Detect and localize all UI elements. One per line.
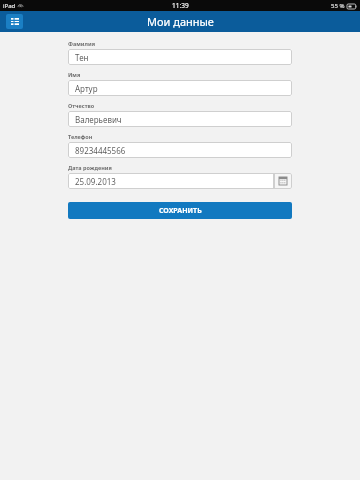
button[interactable]: СОХРАНИТЬ [68,202,292,219]
button[interactable]: Артур [68,80,292,96]
staticText: Дата рождения [68,164,112,171]
staticText: iPad [3,2,16,10]
staticText: Фамилия [68,40,96,47]
button[interactable]: Валерьевич [68,111,292,127]
staticText: 11:39 [172,1,189,10]
staticText: Отчество [68,102,95,109]
staticText: Телефон [68,133,93,140]
staticText: 89234445566 [75,145,126,156]
staticText: Мои данные [147,14,214,29]
staticText: Имя [68,71,81,78]
button[interactable]: 25.09.2013 [68,173,274,189]
staticText: Валерьевич [75,114,122,125]
staticText: Артур [75,83,98,94]
button[interactable]: 89234445566 [68,142,292,158]
button[interactable]: Pick date [274,173,292,189]
staticText: Тен [75,52,89,63]
staticText: 25.09.2013 [75,176,116,187]
button[interactable]: Menu [6,14,23,29]
staticText: 55 % [331,2,345,10]
button[interactable]: Тен [68,49,292,65]
staticText: СОХРАНИТЬ [159,206,202,216]
